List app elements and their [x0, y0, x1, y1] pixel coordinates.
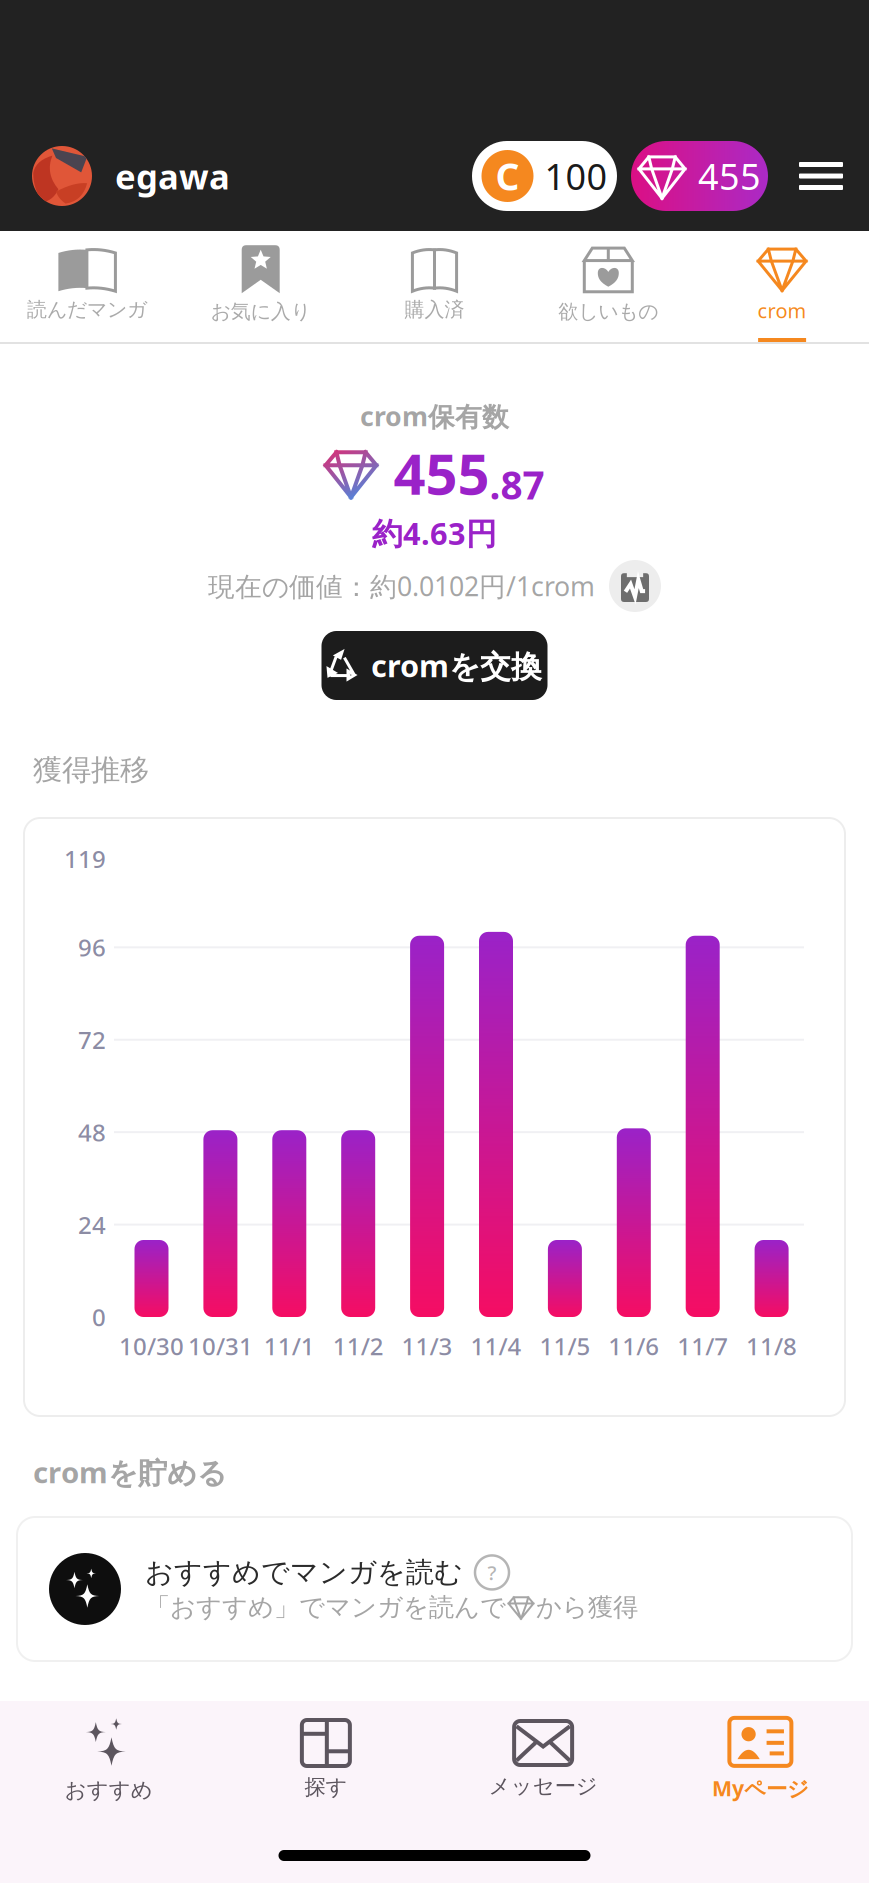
- staticText: 欲しいもの: [558, 299, 658, 324]
- button[interactable]: egawa: [32, 141, 230, 211]
- staticText: cromを貯める: [33, 1452, 227, 1491]
- staticText: 10/31: [188, 1330, 253, 1362]
- staticText: 現在の価値：約0.0102円/1crom: [208, 568, 595, 604]
- staticText: 11/7: [677, 1330, 728, 1362]
- button[interactable]: Myページ: [652, 1718, 869, 1802]
- button[interactable]: cromを交換: [321, 631, 547, 700]
- button[interactable]: 455: [631, 141, 768, 211]
- button[interactable]: C: [472, 141, 617, 211]
- staticText: Myページ: [712, 1774, 809, 1802]
- staticText: 0: [92, 1301, 106, 1333]
- staticText: 11/6: [608, 1330, 659, 1362]
- staticText: 11/1: [264, 1330, 315, 1362]
- staticText: おすすめ: [65, 1777, 153, 1803]
- staticText: おすすめでマンガを読む: [145, 1555, 463, 1590]
- staticText: .87: [489, 459, 544, 510]
- staticText: 119: [64, 843, 106, 875]
- staticText: egawa: [115, 153, 230, 199]
- button[interactable]: おすすめでマンガを読む: [17, 1517, 852, 1661]
- button[interactable]: お気に入り: [174, 231, 348, 344]
- staticText: C: [495, 151, 519, 201]
- staticText: 購入済: [404, 297, 464, 322]
- staticText: 11/2: [333, 1330, 384, 1362]
- button[interactable]: crom: [695, 231, 869, 344]
- staticText: 11/5: [539, 1330, 590, 1362]
- staticText: 11/8: [746, 1330, 797, 1362]
- staticText: 72: [78, 1024, 106, 1056]
- staticText: 96: [78, 931, 106, 963]
- staticText: メッセージ: [489, 1773, 598, 1799]
- staticText: 「おすすめ」でマンガを読んで: [145, 1592, 506, 1623]
- staticText: 10/30: [119, 1330, 184, 1362]
- button[interactable]: 読んだマンガ: [0, 231, 174, 344]
- button[interactable]: おすすめ: [0, 1717, 217, 1803]
- staticText: 11/3: [402, 1330, 453, 1362]
- staticText: お気に入り: [211, 299, 311, 324]
- staticText: 読んだマンガ: [27, 297, 147, 322]
- staticText: ?: [487, 1559, 496, 1586]
- staticText: crom保有数: [360, 398, 509, 434]
- staticText: 獲得推移: [33, 752, 149, 788]
- staticText: 約4.63円: [372, 513, 497, 553]
- staticText: 455: [698, 152, 761, 200]
- button[interactable]: 欲しいもの: [521, 231, 695, 344]
- button[interactable]: 探す: [217, 1720, 434, 1800]
- staticText: 探す: [304, 1774, 347, 1800]
- button[interactable]: メッセージ: [434, 1721, 652, 1799]
- staticText: 100: [544, 152, 607, 200]
- staticText: cromを交換: [371, 645, 542, 686]
- staticText: 24: [78, 1209, 106, 1240]
- staticText: から獲得: [536, 1592, 638, 1623]
- button[interactable]: 購入済: [348, 231, 521, 344]
- staticText: 48: [78, 1116, 106, 1148]
- button[interactable]: Menu: [799, 141, 843, 211]
- staticText: 11/4: [470, 1330, 521, 1362]
- staticText: crom: [758, 297, 807, 324]
- staticText: 455: [393, 436, 489, 510]
- button[interactable]: Value details: [609, 560, 661, 612]
